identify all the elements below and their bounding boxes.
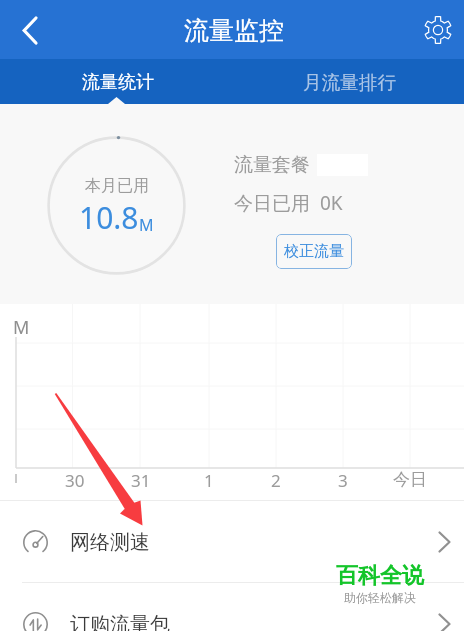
staticText: 30 bbox=[65, 469, 85, 492]
button[interactable]: Back bbox=[5, 6, 53, 54]
button[interactable]: Settings bbox=[414, 6, 462, 54]
staticText: 助你轻松解决 bbox=[344, 590, 416, 605]
staticText: 百科全说 bbox=[336, 562, 424, 590]
staticText: 1 bbox=[204, 469, 214, 492]
staticText: 3 bbox=[338, 469, 348, 492]
button[interactable]: 订购流量包 bbox=[0, 583, 464, 631]
staticText: 本月已用 bbox=[85, 176, 149, 196]
staticText: M bbox=[139, 214, 154, 236]
staticText: 2 bbox=[271, 469, 281, 492]
staticText: 流量套餐 bbox=[234, 153, 310, 177]
staticText: 校正流量 bbox=[284, 242, 344, 261]
staticText: 订购流量包 bbox=[70, 612, 170, 631]
staticText: 流量统计 bbox=[82, 71, 154, 94]
staticText: 网络测速 bbox=[70, 530, 150, 555]
staticText: 流量监控 bbox=[184, 15, 284, 46]
button[interactable]: 校正流量 bbox=[276, 234, 352, 269]
button[interactable]: 网络测速 bbox=[0, 501, 464, 583]
button[interactable]: 流量统计 bbox=[0, 59, 235, 104]
staticText: 今日 bbox=[393, 469, 427, 490]
staticText: 10.8 bbox=[79, 197, 139, 238]
staticText: M bbox=[13, 315, 30, 340]
staticText: 今日已用 0K bbox=[234, 190, 343, 216]
button[interactable]: 月流量排行 bbox=[235, 59, 464, 104]
staticText: 月流量排行 bbox=[303, 71, 396, 94]
staticText: 31 bbox=[131, 469, 151, 492]
